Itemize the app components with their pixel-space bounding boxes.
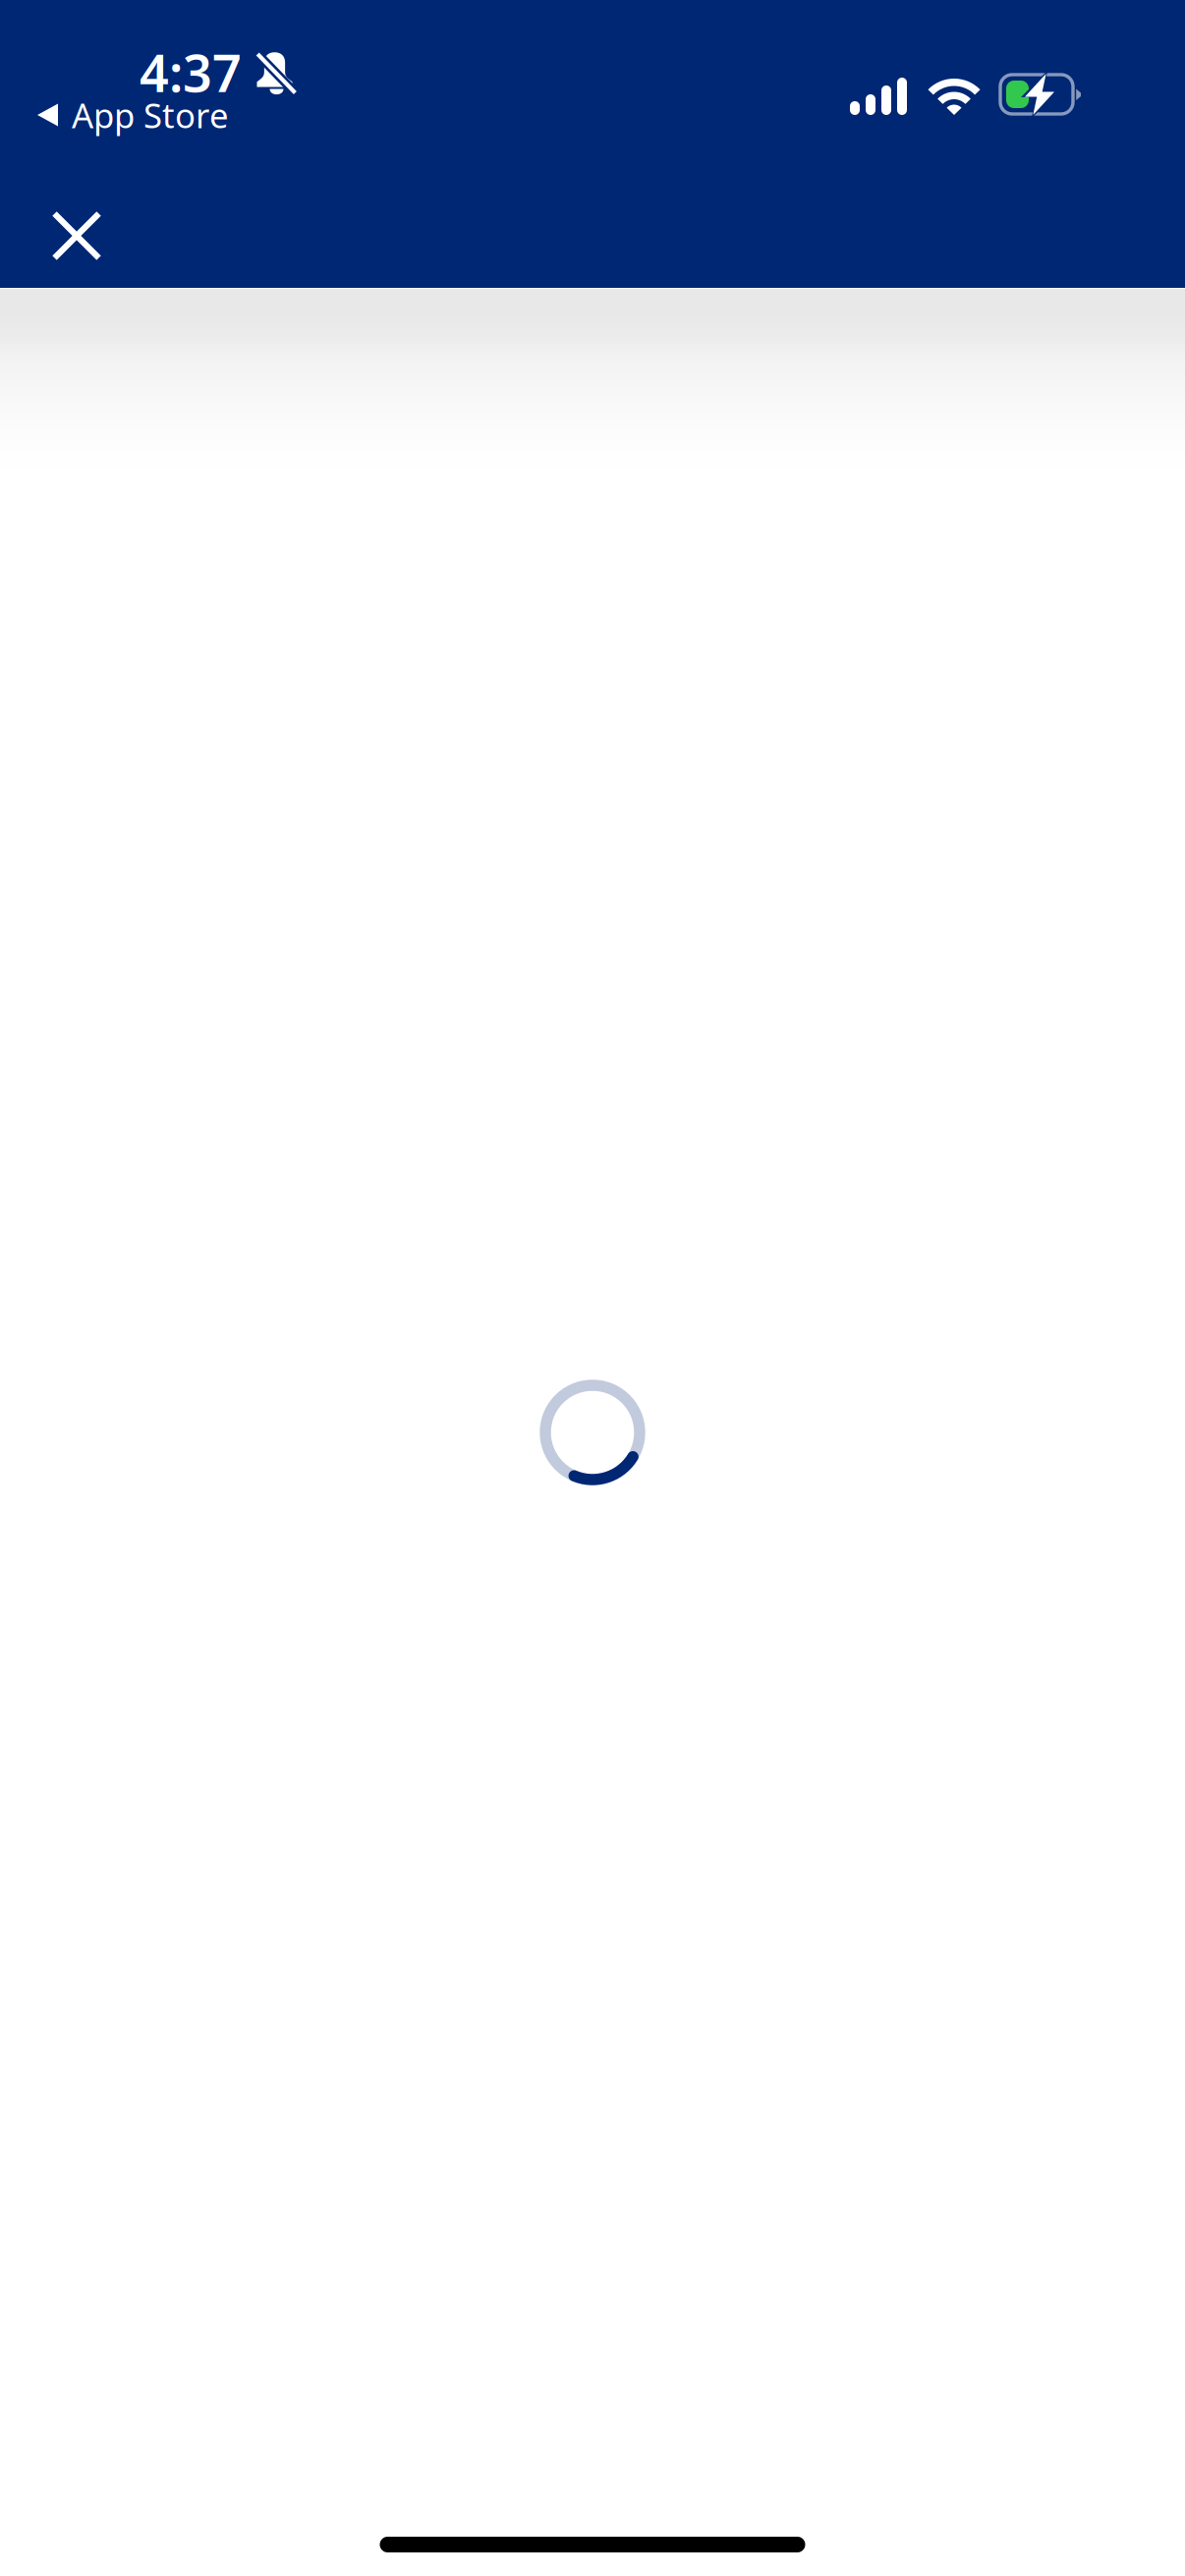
staticText: 4:37	[140, 38, 242, 106]
button[interactable]: App Store	[37, 92, 229, 138]
button[interactable]: Close	[23, 182, 131, 290]
staticText: App Store	[72, 92, 229, 138]
